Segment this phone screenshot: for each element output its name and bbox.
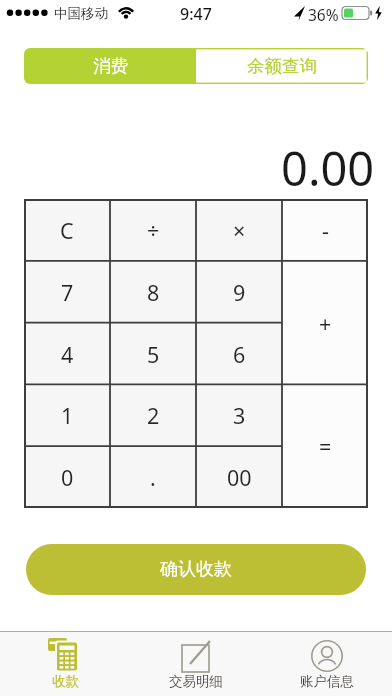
button[interactable]: 3 <box>196 384 282 446</box>
button[interactable]: 8 <box>110 261 196 323</box>
staticText: 中国移动 <box>54 5 108 22</box>
button[interactable]: 收款 <box>0 632 130 696</box>
button[interactable]: × <box>196 199 282 261</box>
button[interactable]: 7 <box>24 261 110 323</box>
staticText: × <box>233 216 246 245</box>
button[interactable]: = <box>282 384 368 508</box>
staticText: 确认收款 <box>160 558 232 581</box>
staticText: 8 <box>147 278 160 307</box>
button[interactable]: - <box>282 199 368 261</box>
staticText: ÷ <box>147 216 160 245</box>
button[interactable]: 确认收款 <box>26 544 366 595</box>
button[interactable]: 00 <box>196 446 282 508</box>
staticText: = <box>319 432 332 461</box>
staticText: 收款 <box>52 673 79 690</box>
button[interactable]: 2 <box>110 384 196 446</box>
staticText: 7 <box>61 278 74 307</box>
button[interactable]: ÷ <box>110 199 196 261</box>
button[interactable]: + <box>282 261 368 385</box>
staticText: 00 <box>227 463 252 492</box>
staticText: + <box>319 309 332 338</box>
staticText: 1 <box>61 401 74 430</box>
staticText: 3 <box>233 401 246 430</box>
button[interactable]: 9 <box>196 261 282 323</box>
staticText: 6 <box>233 340 246 369</box>
staticText: 0 <box>61 463 74 492</box>
button[interactable]: C <box>24 199 110 261</box>
staticText: C <box>60 216 74 245</box>
button[interactable]: 1 <box>24 384 110 446</box>
staticText: 交易明细 <box>169 673 223 690</box>
staticText: 9 <box>233 278 246 307</box>
button[interactable]: 4 <box>24 323 110 385</box>
button[interactable]: 账户信息 <box>261 632 392 696</box>
staticText: 5 <box>147 340 160 369</box>
staticText: 账户信息 <box>300 673 354 690</box>
button[interactable]: 消费 <box>24 48 196 84</box>
staticText: - <box>322 216 329 245</box>
staticText: 0.00 <box>281 136 375 192</box>
button[interactable]: 余额查询 <box>196 48 368 84</box>
button[interactable]: 6 <box>196 323 282 385</box>
button[interactable]: 交易明细 <box>130 632 261 696</box>
button[interactable]: . <box>110 446 196 508</box>
staticText: 消费 <box>93 55 128 77</box>
staticText: 4 <box>61 340 74 369</box>
staticText: 余额查询 <box>247 55 317 77</box>
staticText: . <box>150 463 156 492</box>
staticText: 2 <box>147 401 160 430</box>
button[interactable]: 5 <box>110 323 196 385</box>
staticText: 36% <box>308 4 339 25</box>
staticText: 9:47 <box>180 3 212 25</box>
button[interactable]: 0 <box>24 446 110 508</box>
